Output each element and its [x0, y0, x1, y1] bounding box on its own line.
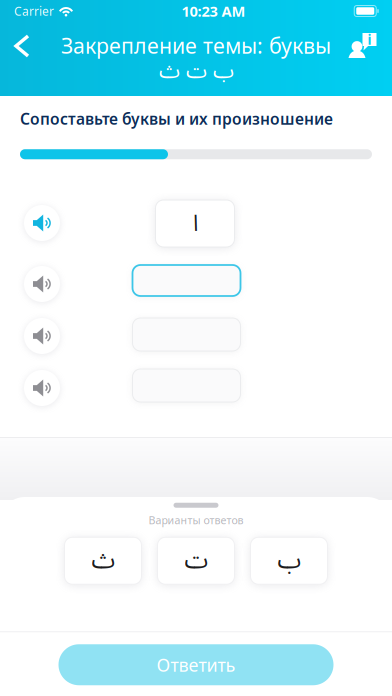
staticText: ت — [184, 535, 208, 586]
staticText: Варианты ответов — [148, 513, 243, 527]
button[interactable]: Answer slot — [155, 200, 234, 247]
staticText: ث — [91, 535, 115, 586]
staticText: i — [367, 30, 371, 49]
button[interactable]: Play pronunciation — [24, 318, 60, 354]
staticText: ب ت ث — [158, 49, 233, 94]
staticText: Carrier — [14, 3, 54, 19]
button[interactable]: Back — [0, 28, 44, 64]
button[interactable]: Play pronunciation — [24, 205, 60, 241]
staticText: Сопоставьте буквы и их произношение — [20, 108, 333, 129]
staticText: Ответить — [156, 652, 235, 677]
button[interactable]: ث — [64, 537, 141, 584]
button[interactable]: Ответить — [58, 644, 333, 685]
button[interactable]: Answer slot — [132, 265, 240, 296]
button[interactable]: Teacher info — [340, 28, 384, 64]
staticText: ا — [192, 200, 197, 247]
staticText: Закрепление темы: буквы — [61, 31, 331, 60]
button[interactable]: Play pronunciation — [24, 370, 60, 406]
staticText: 10:23 AM — [181, 1, 245, 21]
staticText: ب — [277, 535, 301, 586]
button[interactable]: Play pronunciation — [24, 266, 60, 302]
button[interactable]: ت — [157, 537, 234, 584]
button[interactable]: ب — [250, 537, 327, 584]
